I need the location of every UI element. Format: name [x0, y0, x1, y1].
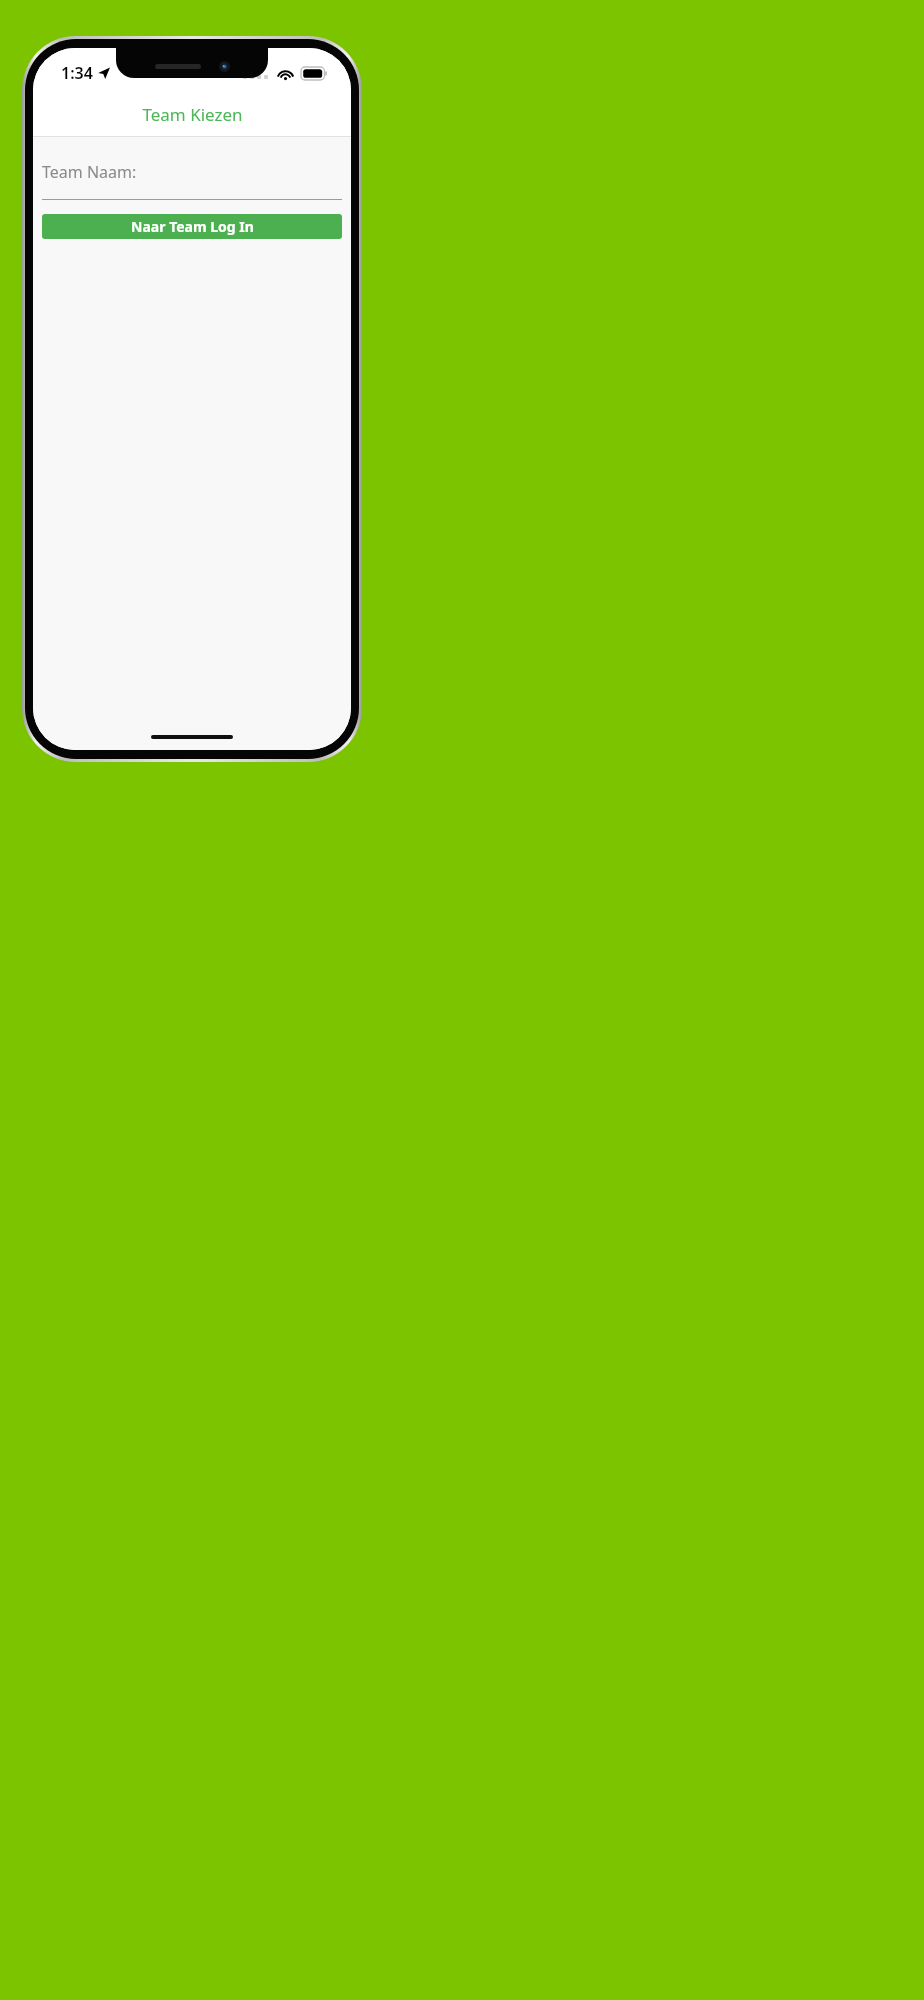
staticText: 1:34	[61, 62, 93, 84]
staticText: Team Naam:	[42, 161, 137, 183]
button[interactable]: Team Naam:	[42, 161, 342, 200]
staticText: Team Kiezen	[142, 103, 243, 126]
staticText: Naar Team Log In	[131, 217, 254, 236]
button[interactable]: Naar Team Log In	[42, 214, 342, 239]
